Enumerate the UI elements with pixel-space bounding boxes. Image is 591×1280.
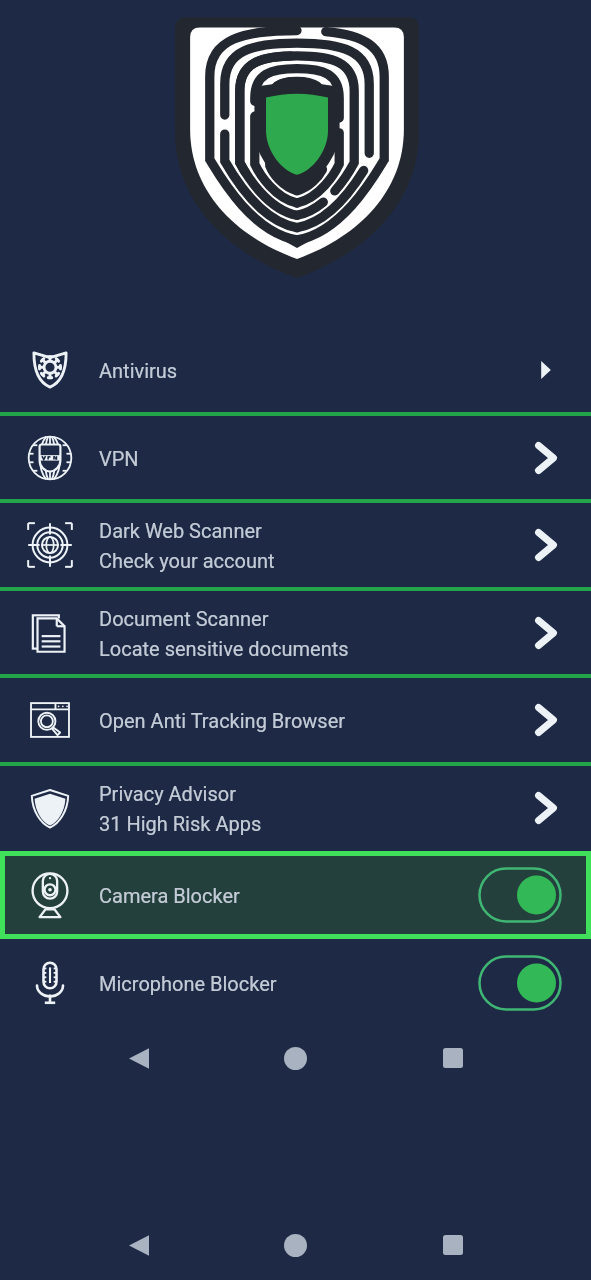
button[interactable]: Antivirus xyxy=(0,326,591,414)
button[interactable]: Home xyxy=(217,1030,374,1086)
staticText: Document Scanner xyxy=(99,607,269,630)
staticText: 31 High Risk Apps xyxy=(99,812,262,835)
staticText: Privacy Advisor xyxy=(99,782,236,805)
staticText: Check your account xyxy=(99,549,275,572)
staticText: Microphone Blocker xyxy=(99,972,277,995)
button[interactable]: Microphone Blocker xyxy=(0,939,591,1027)
button[interactable]: VPN xyxy=(0,414,591,502)
staticText: Dark Web Scanner xyxy=(99,519,262,542)
button[interactable]: Home xyxy=(217,1217,374,1273)
button[interactable]: Recents xyxy=(374,1030,531,1086)
button[interactable]: Dark Web Scanner xyxy=(0,501,591,589)
button[interactable]: Open Anti Tracking Browser xyxy=(0,676,591,764)
staticText: VPN xyxy=(99,447,139,470)
button[interactable]: Recents xyxy=(374,1217,531,1273)
staticText: Locate sensitive documents xyxy=(99,637,349,660)
button[interactable]: Back xyxy=(60,1217,217,1273)
button[interactable]: Privacy Advisor xyxy=(0,764,591,852)
button[interactable]: Document Scanner xyxy=(0,589,591,677)
staticText: Open Anti Tracking Browser xyxy=(99,709,346,732)
button[interactable]: Back xyxy=(60,1030,217,1086)
staticText: Antivirus xyxy=(99,359,178,382)
button[interactable]: Camera Blocker xyxy=(0,851,591,939)
staticText: Camera Blocker xyxy=(99,884,240,907)
